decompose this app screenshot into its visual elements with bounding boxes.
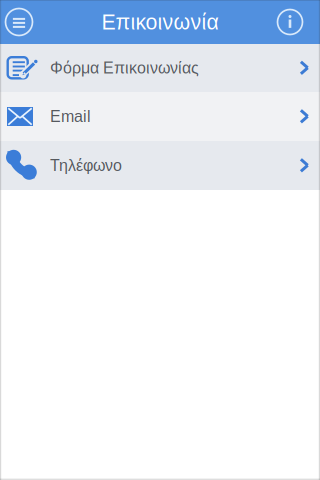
staticText: Επικοινωνία [101, 10, 218, 34]
button[interactable]: Φόρμα Επικοινωνίας [0, 44, 320, 92]
staticText: Φόρμα Επικοινωνίας [50, 59, 199, 77]
button[interactable]: Τηλέφωνο [0, 141, 320, 190]
staticText: Email [50, 108, 91, 125]
button[interactable]: Email [0, 92, 320, 141]
button[interactable]: Menu [0, 0, 41, 44]
staticText: Τηλέφωνο [50, 157, 122, 174]
button[interactable]: Info [268, 0, 320, 44]
